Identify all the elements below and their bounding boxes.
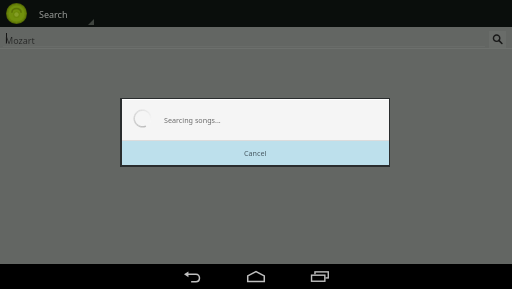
button[interactable]: Cancel	[122, 141, 389, 165]
button[interactable]: Search	[0, 0, 512, 27]
staticText: Searcing songs...	[164, 115, 221, 125]
button[interactable]: Search	[489, 31, 506, 48]
button[interactable]: Back	[160, 264, 224, 289]
button[interactable]	[3, 27, 487, 47]
staticText: Search	[39, 8, 68, 20]
staticText: Mozart	[5, 34, 35, 46]
staticText: Cancel	[244, 148, 267, 158]
button[interactable]: Home	[224, 264, 288, 289]
button[interactable]: Recent apps	[288, 264, 352, 289]
